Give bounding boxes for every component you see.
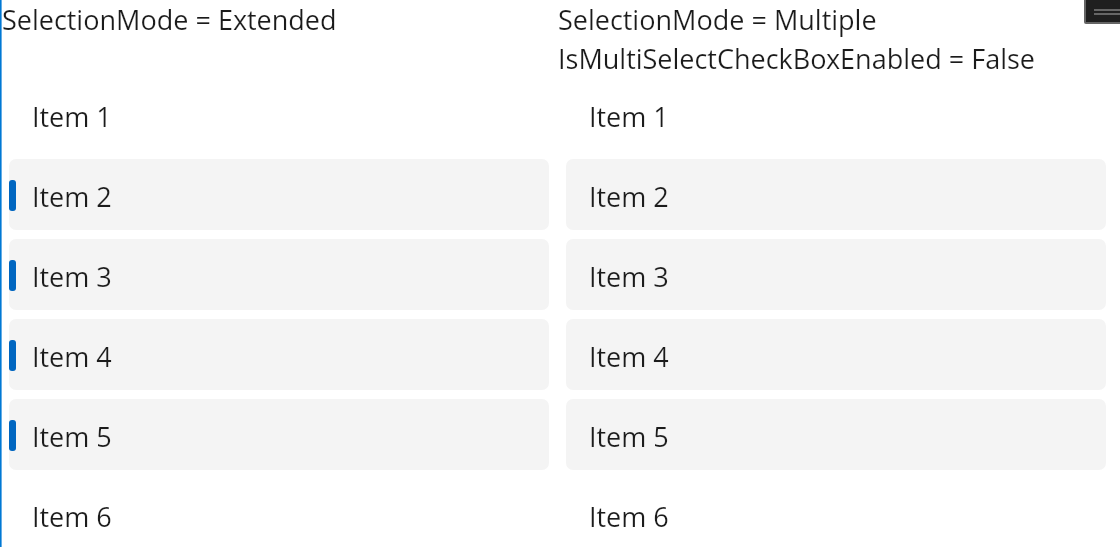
button[interactable]: Item 6 <box>566 475 1106 547</box>
staticText: Item 2 <box>589 178 669 215</box>
button[interactable]: Item 4 <box>9 315 549 395</box>
button[interactable]: Item 5 <box>566 395 1106 475</box>
staticText: Item 5 <box>589 418 669 455</box>
staticText: Item 6 <box>32 498 112 535</box>
staticText: Item 6 <box>589 498 669 535</box>
staticText: Item 2 <box>32 178 112 215</box>
button[interactable]: Menu <box>1086 0 1120 22</box>
staticText: Item 1 <box>32 98 112 135</box>
button[interactable]: Item 3 <box>9 235 549 315</box>
staticText: SelectionMode = Extended <box>2 1 337 38</box>
button[interactable]: Item 5 <box>9 395 549 475</box>
staticText: Item 4 <box>32 338 112 375</box>
button[interactable]: Item 2 <box>566 155 1106 235</box>
button[interactable]: Item 1 <box>566 75 1106 155</box>
button[interactable]: Item 4 <box>566 315 1106 395</box>
staticText: Item 3 <box>32 258 112 295</box>
staticText: IsMultiSelectCheckBoxEnabled = False <box>558 40 1036 77</box>
staticText: Item 5 <box>32 418 112 455</box>
button[interactable]: Item 3 <box>566 235 1106 315</box>
staticText: Item 1 <box>589 98 669 135</box>
button[interactable]: Item 1 <box>9 75 549 155</box>
button[interactable]: Item 2 <box>9 155 549 235</box>
staticText: SelectionMode = Multiple <box>558 1 877 38</box>
staticText: Item 3 <box>589 258 669 295</box>
button[interactable]: Item 6 <box>9 475 549 547</box>
staticText: Item 4 <box>589 338 669 375</box>
